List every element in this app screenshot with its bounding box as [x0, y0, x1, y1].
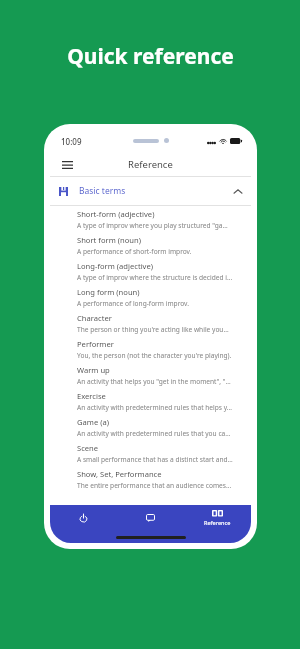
button[interactable]: Game (a): [50, 414, 251, 440]
staticText: A performance of short-form improv.: [77, 247, 192, 256]
staticText: Basic terms: [79, 185, 126, 197]
staticText: 10:09: [61, 136, 82, 147]
staticText: A performance of long-form improv.: [77, 299, 189, 308]
staticText: Long form (noun): [77, 287, 140, 297]
staticText: A small performance that has a distinct …: [77, 455, 233, 464]
button[interactable]: Long-form (adjective): [50, 258, 251, 284]
button[interactable]: Scene: [50, 440, 251, 466]
button[interactable]: Short-form (adjective): [50, 206, 251, 232]
button[interactable]: Warm up: [50, 362, 251, 388]
button[interactable]: Reference: [184, 505, 251, 531]
staticText: A type of improv where you play structur…: [77, 221, 228, 230]
button[interactable]: Long form (noun): [50, 284, 251, 310]
staticText: Scene: [77, 443, 99, 453]
button[interactable]: Performer: [50, 336, 251, 362]
staticText: Reference: [204, 519, 231, 527]
staticText: Short-form (adjective): [77, 209, 155, 219]
button[interactable]: Messages: [117, 505, 184, 531]
staticText: Game (a): [77, 417, 109, 427]
staticText: Performer: [77, 339, 114, 349]
staticText: An activity that helps you "get in the m…: [77, 377, 231, 386]
button[interactable]: Open navigation menu: [56, 154, 78, 176]
staticText: The entire performance that an audience …: [77, 481, 232, 490]
staticText: An activity with predetermined rules tha…: [77, 403, 232, 412]
button[interactable]: Exercise: [50, 388, 251, 414]
button[interactable]: Show, Set, Performance: [50, 466, 251, 492]
staticText: An activity with predetermined rules tha…: [77, 429, 231, 438]
button[interactable]: Character: [50, 310, 251, 336]
button[interactable]: Basic terms: [50, 177, 251, 205]
staticText: Show, Set, Performance: [77, 469, 162, 479]
staticText: Character: [77, 313, 112, 323]
staticText: Short form (noun): [77, 235, 141, 245]
staticText: Exercise: [77, 391, 106, 401]
button[interactable]: Timer: [50, 505, 117, 531]
staticText: A type of improv where the structure is …: [77, 273, 233, 282]
staticText: You, the person (not the character you'r…: [77, 351, 232, 360]
staticText: Warm up: [77, 365, 110, 375]
staticText: Long-form (adjective): [77, 261, 154, 271]
staticText: Quick reference: [67, 42, 234, 71]
button[interactable]: Short form (noun): [50, 232, 251, 258]
staticText: The person or thing you're acting like w…: [77, 325, 229, 334]
staticText: Reference: [128, 158, 173, 171]
